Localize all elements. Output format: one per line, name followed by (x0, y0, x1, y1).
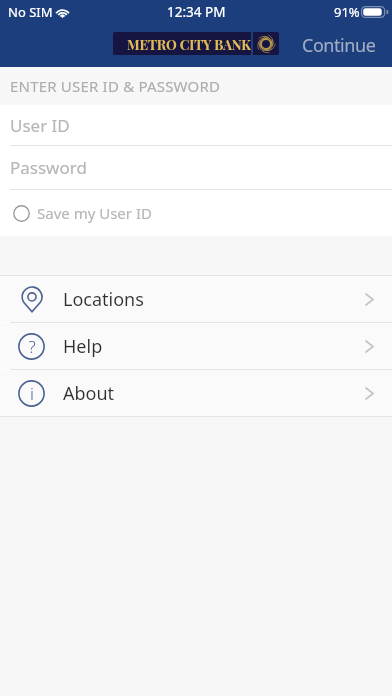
button[interactable]: ? (0, 323, 392, 369)
staticText: ENTER USER ID & PASSWORD (10, 76, 221, 96)
staticText: Continue (302, 33, 376, 58)
staticText: Save my User ID (37, 203, 152, 223)
other: Open Help (365, 340, 374, 353)
other: Battery 91 percent (361, 6, 388, 18)
staticText: ? (28, 335, 36, 358)
other: Open About (365, 387, 374, 400)
staticText: User ID (10, 114, 70, 137)
staticText: i (30, 382, 34, 405)
button[interactable]: i (0, 370, 392, 416)
button[interactable]: Continue (290, 27, 392, 64)
staticText: About (63, 381, 115, 406)
button[interactable]: Locations (0, 276, 392, 322)
button[interactable]: Password (0, 146, 392, 189)
staticText: METRO CITY BANK (127, 35, 251, 53)
staticText: Locations (63, 287, 144, 312)
staticText: 91% (334, 3, 360, 21)
other: Wi-Fi signal (54, 7, 71, 18)
other: Open Locations (365, 293, 374, 306)
button[interactable]: Metro City Bank (113, 32, 279, 55)
staticText: Password (10, 156, 87, 179)
button[interactable]: User ID (0, 105, 392, 145)
staticText: Help (63, 334, 103, 359)
button[interactable]: Save my User ID (0, 190, 392, 236)
staticText: 12:34 PM (167, 3, 226, 21)
staticText: No SIM (8, 3, 53, 21)
